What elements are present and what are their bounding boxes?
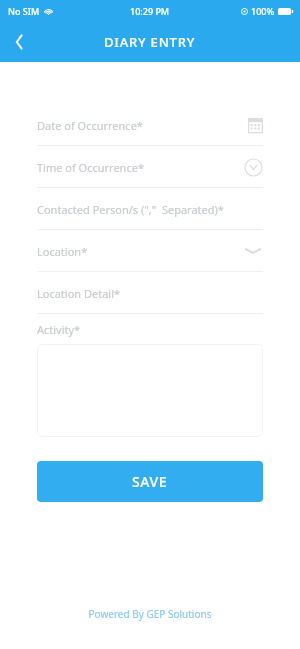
button[interactable]: Location* bbox=[37, 230, 263, 272]
staticText: Contacted Person/s ("," Separated)* bbox=[37, 202, 224, 217]
staticText: Location* bbox=[37, 244, 88, 259]
staticText: Powered By GEP Solutions bbox=[0, 607, 300, 621]
button[interactable]: Back bbox=[0, 22, 40, 62]
other: Select location bbox=[243, 245, 263, 257]
staticText: DIARY ENTRY bbox=[104, 33, 196, 51]
staticText: 10:29 PM bbox=[130, 5, 170, 17]
button[interactable]: SAVE bbox=[37, 461, 263, 502]
button[interactable]: Contacted Person/s ("," Separated)* bbox=[37, 188, 263, 230]
staticText: Location Detail* bbox=[37, 286, 121, 301]
staticText: 100% bbox=[251, 5, 275, 17]
staticText: SAVE bbox=[132, 472, 168, 491]
staticText: No SIM bbox=[8, 5, 40, 17]
other: Pick time bbox=[244, 158, 263, 177]
button[interactable]: Location Detail* bbox=[37, 272, 263, 314]
other: Pick date bbox=[248, 117, 263, 133]
staticText: Time of Occurrence* bbox=[37, 160, 144, 175]
button[interactable]: Date of Occurrence* bbox=[37, 104, 263, 146]
staticText: Date of Occurrence* bbox=[37, 118, 143, 133]
staticText: Activity* bbox=[37, 322, 81, 337]
button[interactable]: Time of Occurrence* bbox=[37, 146, 263, 188]
